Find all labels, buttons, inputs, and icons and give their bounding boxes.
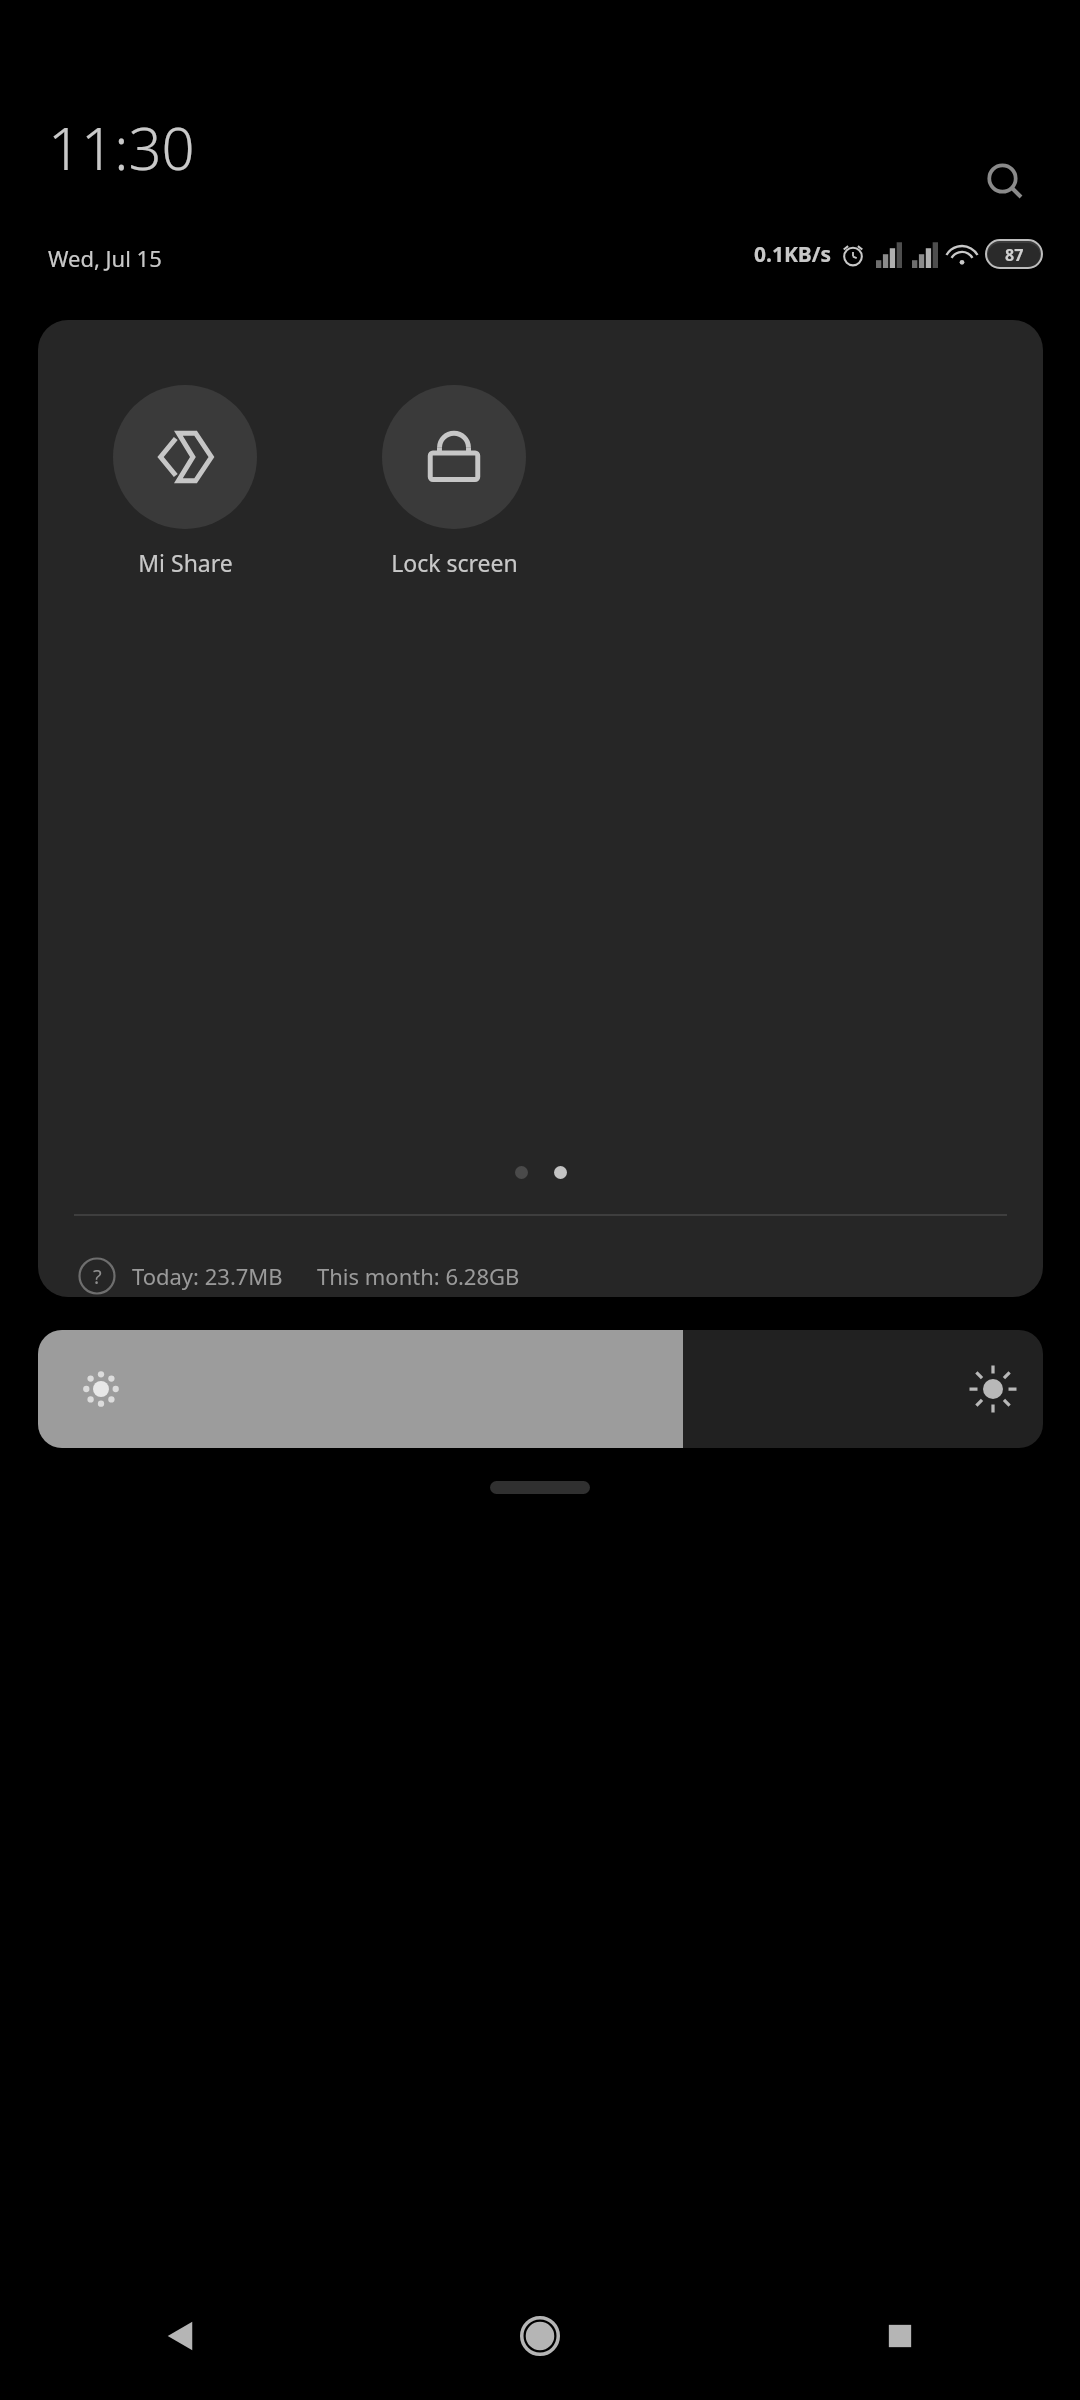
- staticText: This month: 6.28GB: [317, 1261, 520, 1291]
- staticText: 11:30: [48, 108, 195, 187]
- staticText: ?: [93, 1263, 102, 1290]
- button[interactable]: Back: [0, 2288, 360, 2384]
- button[interactable]: Recents: [720, 2288, 1080, 2384]
- staticText: Wed, Jul 15: [48, 243, 162, 273]
- button[interactable]: Mi Share: [100, 385, 270, 578]
- staticText: 0.1KB/s: [754, 240, 832, 269]
- staticText: 87: [1005, 244, 1024, 266]
- staticText: Lock screen: [391, 547, 518, 578]
- button[interactable]: ?: [78, 1248, 520, 1297]
- button[interactable]: Expand: [490, 1481, 590, 1494]
- button[interactable]: Search: [962, 138, 1050, 226]
- button[interactable]: Brightness: [38, 1330, 1043, 1448]
- button[interactable]: Home: [360, 2288, 720, 2384]
- staticText: Today: 23.7MB: [132, 1261, 283, 1291]
- button[interactable]: Lock screen: [369, 385, 539, 578]
- staticText: Mi Share: [138, 547, 233, 578]
